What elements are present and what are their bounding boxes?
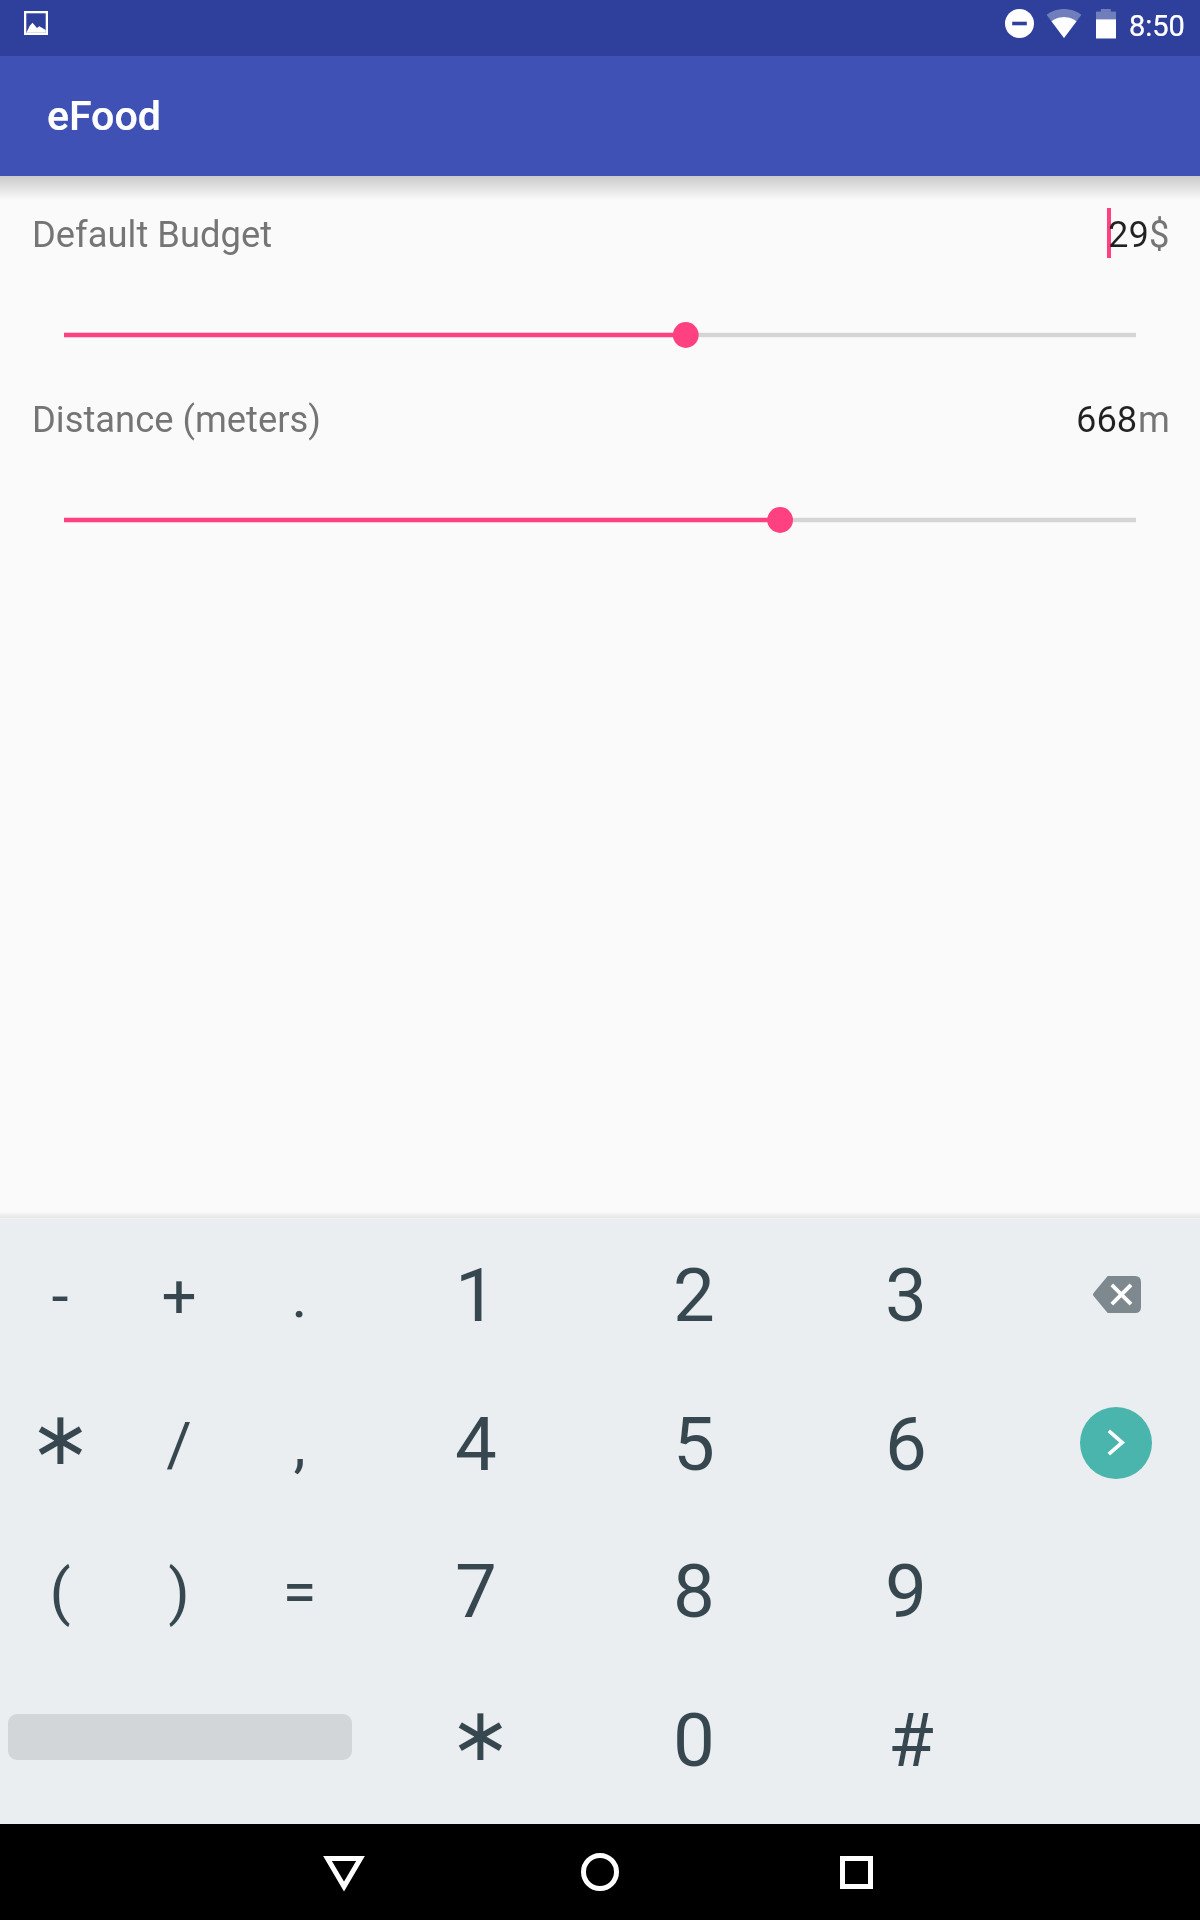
button[interactable]: 9: [846, 1516, 966, 1666]
button[interactable]: #: [851, 1665, 971, 1815]
button[interactable]: -: [0, 1220, 120, 1370]
staticText: /: [166, 1408, 192, 1481]
staticText: 1: [455, 1252, 497, 1339]
staticText: 8: [673, 1548, 715, 1635]
button[interactable]: Distance (meters): [0, 486, 1200, 554]
staticText: 29: [1108, 213, 1149, 256]
button[interactable]: 2: [634, 1220, 754, 1370]
button[interactable]: 1: [416, 1220, 536, 1370]
button[interactable]: +: [119, 1220, 239, 1370]
button[interactable]: 668: [1076, 398, 1170, 441]
staticText: 7: [455, 1548, 497, 1635]
staticText: ∗: [29, 1395, 92, 1482]
staticText: 6: [885, 1401, 927, 1488]
button[interactable]: /: [119, 1369, 239, 1519]
staticText: -: [51, 1259, 69, 1332]
staticText: Default Budget: [32, 213, 273, 256]
button[interactable]: ): [119, 1516, 239, 1666]
button[interactable]: ∗: [420, 1659, 540, 1809]
staticText: Distance (meters): [32, 398, 321, 441]
button[interactable]: .: [239, 1220, 359, 1370]
button[interactable]: Default Budget: [0, 301, 1200, 369]
staticText: #: [888, 1697, 934, 1784]
staticText: (: [49, 1555, 71, 1628]
button[interactable]: Recents: [808, 1824, 904, 1920]
staticText: .: [291, 1259, 308, 1332]
button[interactable]: =: [239, 1516, 359, 1666]
staticText: 2: [673, 1252, 715, 1339]
button[interactable]: (: [0, 1516, 120, 1666]
staticText: ,: [293, 1408, 306, 1481]
staticText: 3: [885, 1252, 927, 1339]
button[interactable]: Backspace: [1056, 1234, 1176, 1354]
button[interactable]: Enter: [1080, 1407, 1152, 1479]
staticText: 8:50: [1129, 9, 1185, 43]
button[interactable]: 4: [416, 1369, 536, 1519]
button[interactable]: 7: [416, 1516, 536, 1666]
button[interactable]: 8: [634, 1516, 754, 1666]
button[interactable]: 29: [1104, 213, 1170, 263]
staticText: 0: [673, 1697, 715, 1784]
staticText: 668: [1076, 398, 1138, 441]
button[interactable]: 0: [634, 1665, 754, 1815]
button[interactable]: 3: [846, 1220, 966, 1370]
button[interactable]: Back: [296, 1824, 392, 1920]
button[interactable]: ∗: [0, 1363, 120, 1513]
staticText: ∗: [449, 1691, 512, 1778]
staticText: 4: [455, 1401, 497, 1488]
staticText: m: [1138, 398, 1170, 441]
staticText: =: [282, 1555, 317, 1628]
staticText: eFood: [47, 92, 161, 140]
button[interactable]: Home: [552, 1824, 648, 1920]
staticText: 9: [885, 1548, 927, 1635]
staticText: $: [1149, 213, 1170, 256]
staticText: +: [161, 1259, 197, 1332]
staticText: ): [168, 1555, 190, 1628]
button[interactable]: 6: [846, 1369, 966, 1519]
button[interactable]: 5: [634, 1369, 754, 1519]
button[interactable]: ,: [239, 1369, 359, 1519]
staticText: 5: [673, 1401, 715, 1488]
